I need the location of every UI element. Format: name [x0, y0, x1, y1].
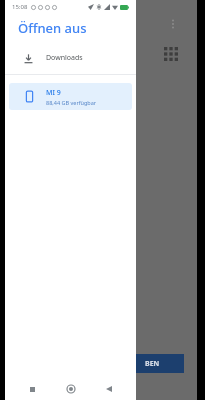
button[interactable]: Downloads: [5, 47, 136, 69]
button[interactable]: BEN: [136, 354, 184, 373]
button[interactable]: Apps: [163, 46, 179, 62]
staticText: Downloads: [46, 53, 83, 63]
button[interactable]: MI 9: [9, 83, 132, 110]
button[interactable]: Back: [98, 378, 120, 400]
staticText: Öffnen aus: [18, 19, 87, 37]
staticText: BEN: [145, 359, 160, 369]
staticText: 88,44 GB verfügbar: [46, 99, 97, 106]
button[interactable]: Home: [60, 378, 82, 400]
button[interactable]: Recents: [21, 378, 43, 400]
button[interactable]: More options: [166, 17, 180, 31]
staticText: MI 9: [46, 88, 61, 98]
staticText: 15:08: [12, 3, 28, 11]
